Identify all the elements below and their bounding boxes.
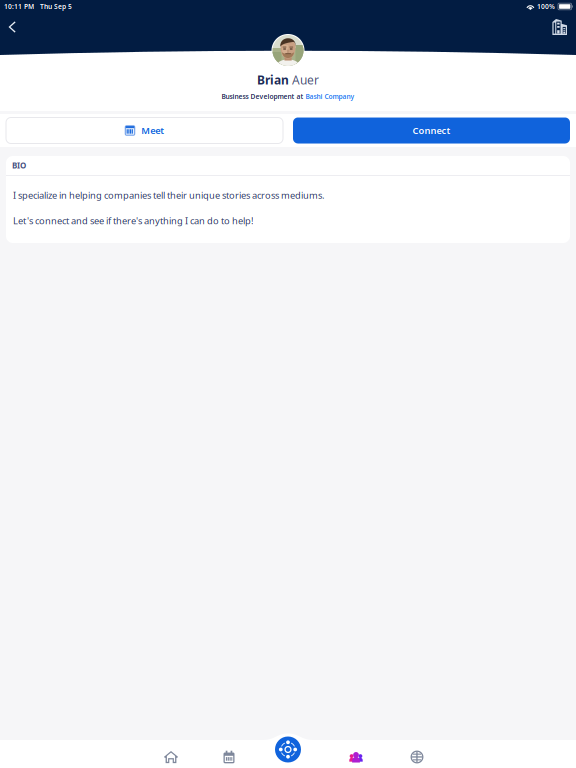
staticText: I specialize in helping companies tell t… — [13, 189, 325, 201]
button[interactable]: Calendar — [207, 744, 251, 768]
staticText: BIO — [12, 160, 26, 171]
staticText: Thu Sep 5 — [40, 2, 72, 11]
button[interactable]: Connect — [293, 117, 570, 143]
button[interactable]: Network — [274, 735, 302, 763]
button[interactable]: Home — [149, 744, 193, 768]
button[interactable]: Meet — [6, 117, 283, 143]
staticText: 100% — [537, 2, 555, 11]
staticText: Brian — [257, 72, 289, 88]
staticText: 10:11 PM — [4, 2, 34, 11]
staticText: Let's connect and see if there's anythin… — [13, 214, 254, 227]
staticText: Meet — [141, 124, 164, 137]
button[interactable]: Discover — [395, 744, 439, 768]
staticText: Bashi Company — [305, 92, 354, 101]
staticText: Business Development at — [221, 92, 303, 101]
button[interactable]: Company — [546, 13, 573, 41]
staticText: Auer — [292, 72, 319, 88]
button[interactable]: People — [334, 744, 378, 768]
button[interactable]: Back — [0, 13, 24, 41]
staticText: Connect — [412, 124, 450, 137]
